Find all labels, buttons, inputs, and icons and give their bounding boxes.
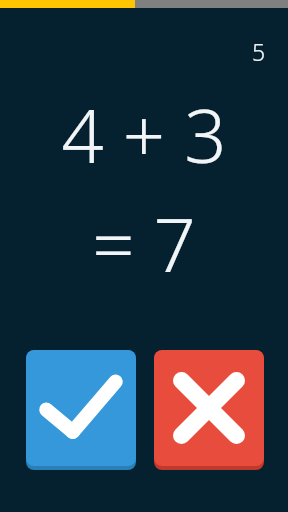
button[interactable]: 5 <box>248 34 270 69</box>
button[interactable]: True <box>26 350 136 470</box>
staticText: = 7 <box>92 193 196 294</box>
staticText: 4 + 3 <box>61 84 227 185</box>
staticText: 5 <box>252 36 266 67</box>
button[interactable]: False <box>154 350 264 470</box>
